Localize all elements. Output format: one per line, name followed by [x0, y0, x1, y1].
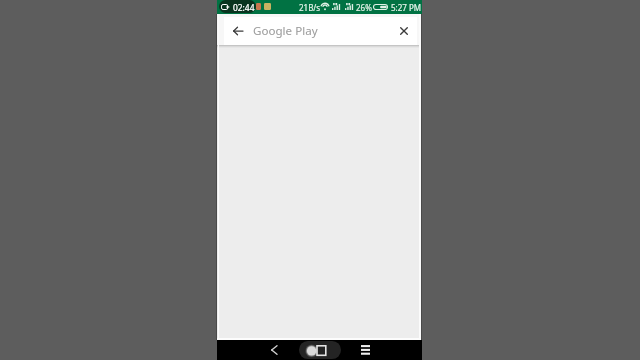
staticText: 26%	[356, 2, 372, 13]
button[interactable]: Clear search	[392, 17, 416, 45]
button[interactable]: Back	[263, 340, 285, 360]
staticText: 21B/s	[299, 2, 321, 13]
button[interactable]: Menu	[353, 340, 377, 360]
button[interactable]: Home	[299, 341, 341, 359]
staticText: Google Play	[253, 23, 318, 39]
button[interactable]: Navigate up	[226, 17, 249, 45]
staticText: 5:27 PM	[391, 2, 422, 13]
staticText: 02:44	[233, 2, 255, 13]
